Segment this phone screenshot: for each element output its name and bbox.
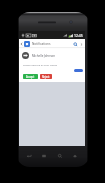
- other: Up: [20, 41, 23, 47]
- button[interactable]: Search: [55, 151, 65, 161]
- button[interactable]: Back: [24, 151, 34, 161]
- button[interactable]: Reject: [40, 74, 52, 79]
- button[interactable]: Learn more: [74, 69, 83, 72]
- button[interactable]: Menu: [39, 151, 49, 161]
- button[interactable]: Search: [71, 40, 79, 49]
- button[interactable]: More options: [79, 40, 84, 49]
- staticText: Please add me as your friend: [23, 63, 58, 66]
- staticText: Michelle Johnson: [32, 54, 56, 58]
- button[interactable]: Home: [70, 151, 80, 161]
- staticText: Notifications: [32, 42, 51, 46]
- staticText: 12:45: [74, 33, 83, 38]
- button[interactable]: Accept: [23, 74, 38, 79]
- staticText: Accept: [26, 75, 35, 79]
- staticText: Reject: [42, 75, 50, 79]
